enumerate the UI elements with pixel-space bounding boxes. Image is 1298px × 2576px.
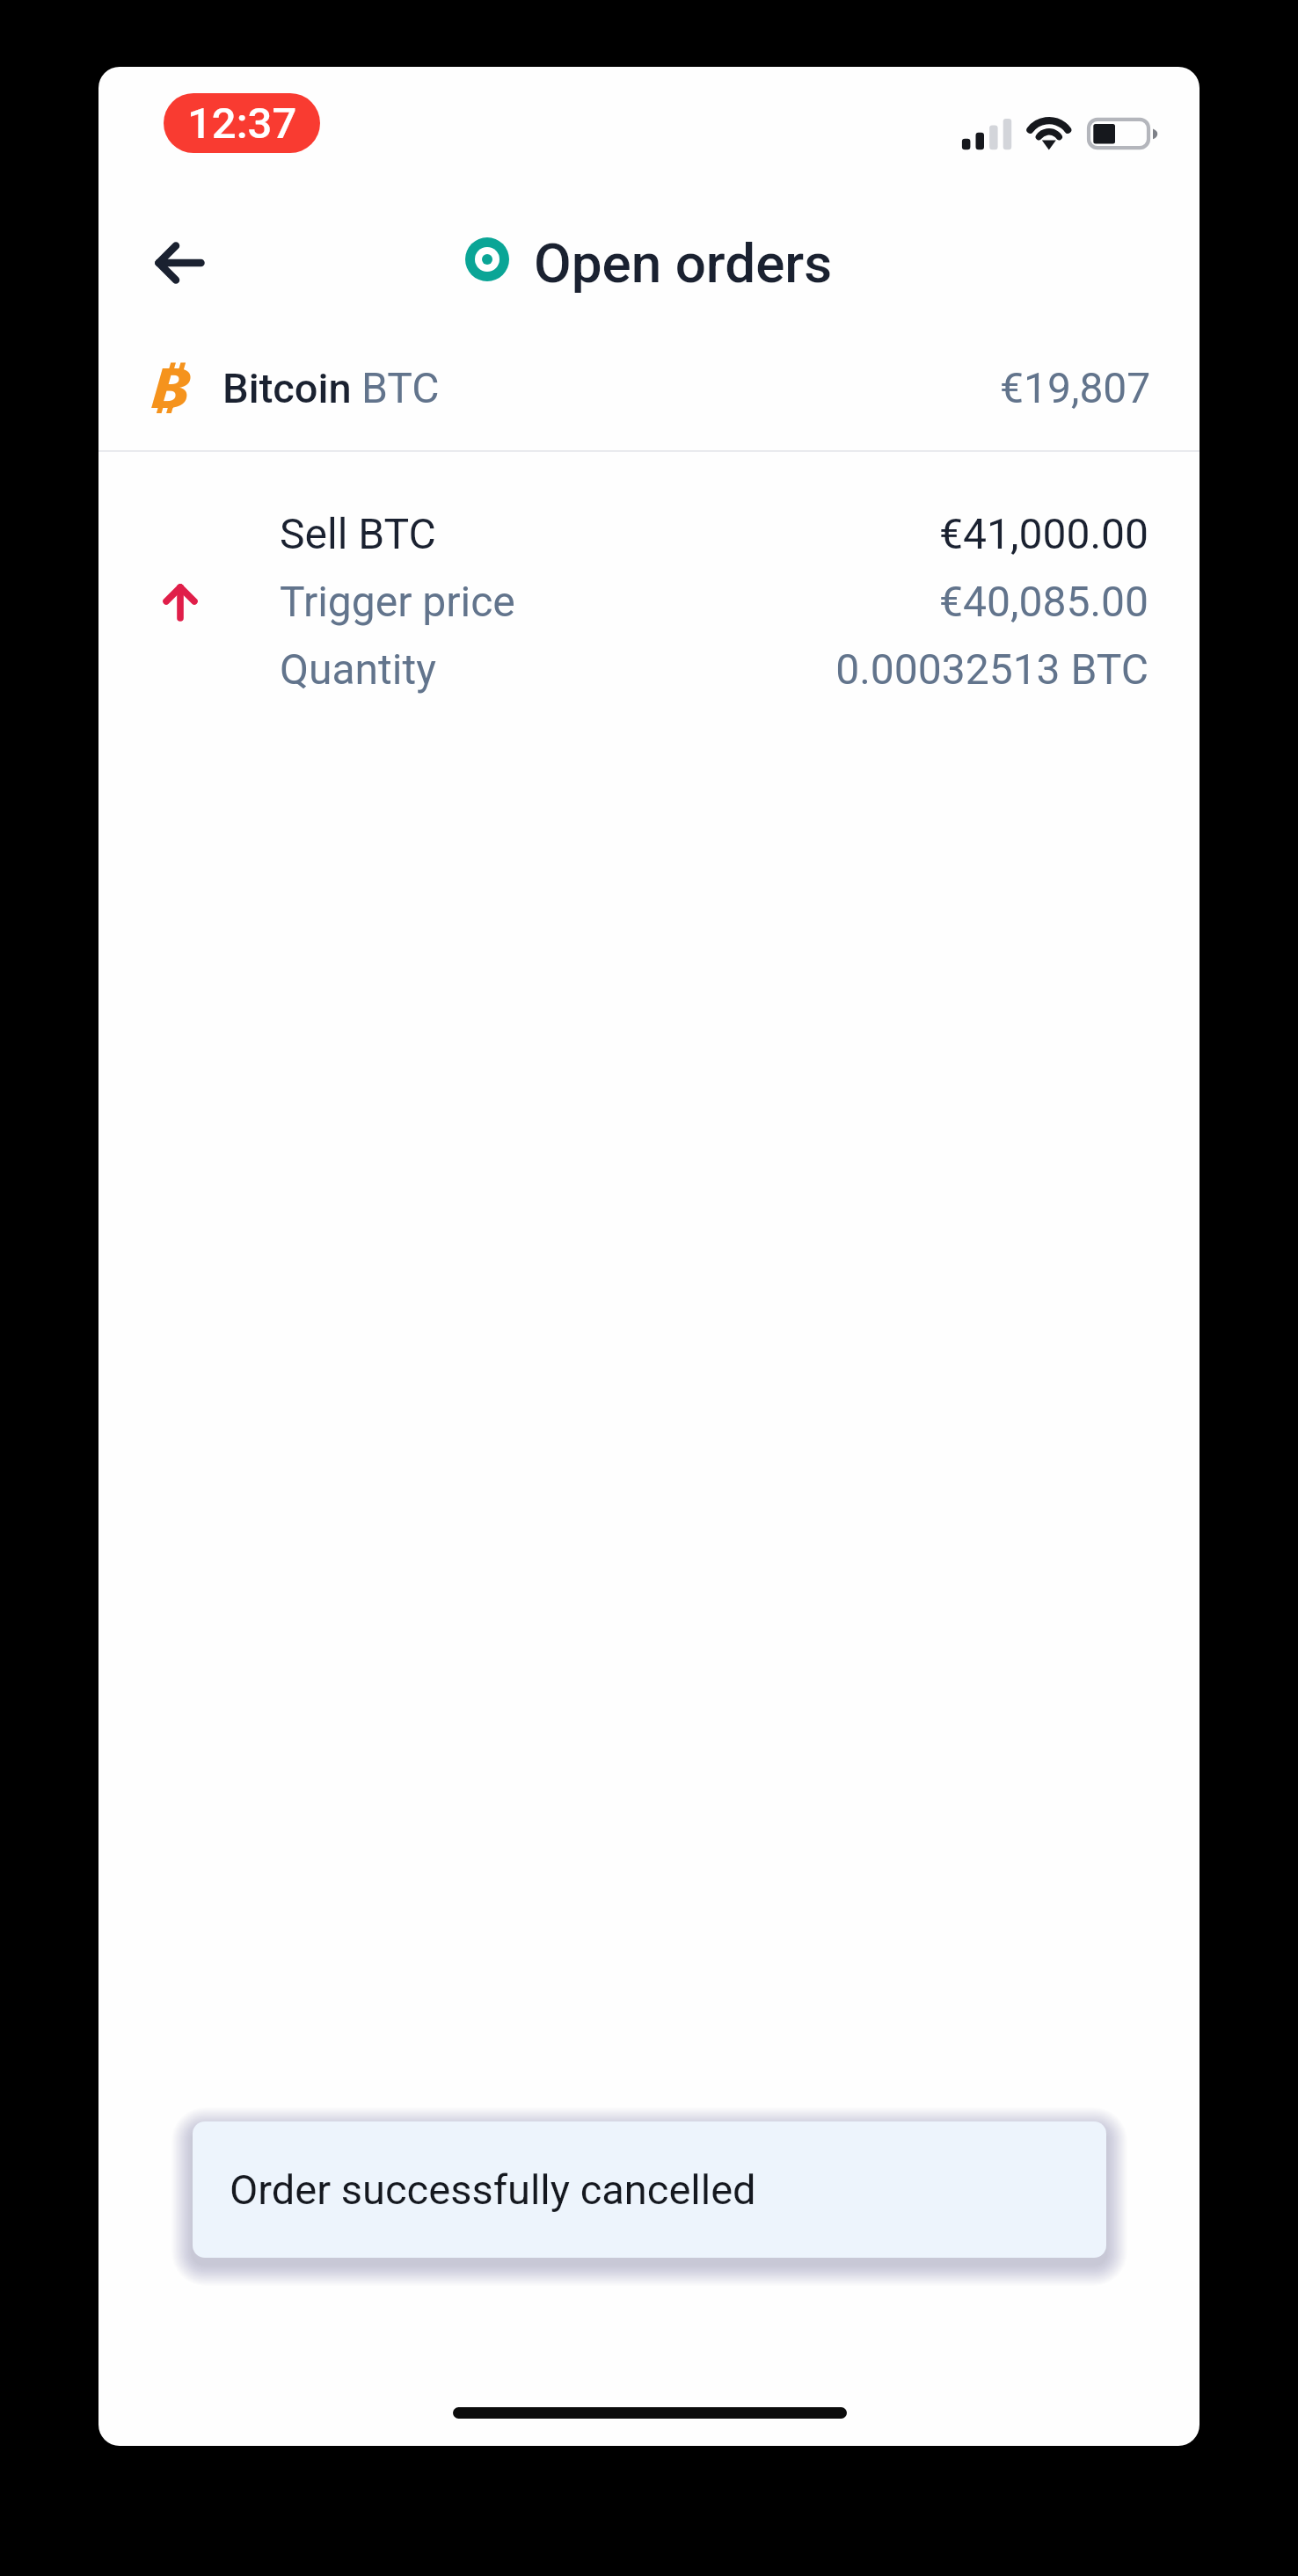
button[interactable]: Back (123, 207, 236, 319)
button[interactable]: Order successfully cancelled (193, 2121, 1106, 2258)
staticText: ₿ (149, 349, 191, 423)
staticText: €40,085.00 (939, 577, 1149, 626)
staticText: 12:37 (187, 98, 297, 149)
staticText: Order successfully cancelled (230, 2165, 756, 2214)
staticText: Open orders (534, 231, 833, 295)
staticText: Bitcoin (222, 364, 352, 412)
button[interactable]: Sell BTC (98, 452, 1200, 655)
staticText: Quantity (280, 644, 436, 694)
staticText: Sell BTC (280, 509, 436, 558)
staticText: €19,807 (1000, 363, 1151, 412)
staticText: 0.00032513 BTC (835, 644, 1149, 694)
staticText: €41,000.00 (939, 509, 1149, 558)
button[interactable]: Bitcoin (98, 346, 1200, 430)
staticText: BTC (361, 363, 440, 412)
staticText: Trigger price (280, 577, 515, 626)
